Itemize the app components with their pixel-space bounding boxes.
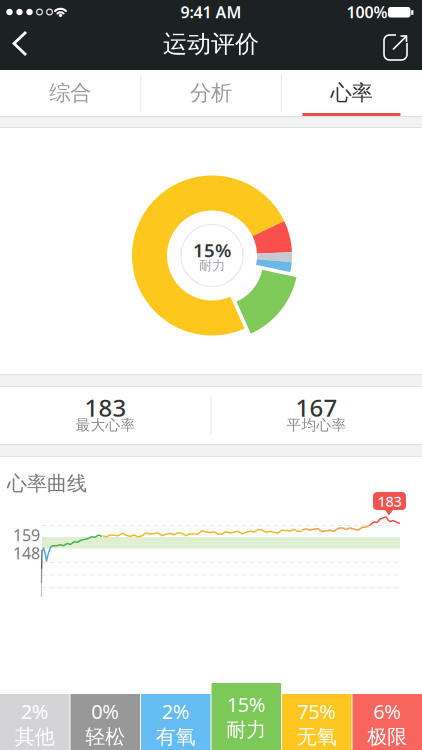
staticText: 耐力 [226, 718, 266, 742]
staticText: 综合 [49, 80, 91, 106]
staticText: 75% [297, 698, 336, 725]
staticText: 15% [193, 238, 231, 262]
staticText: 心率曲线 [7, 471, 87, 496]
staticText: 148 [13, 542, 40, 564]
button[interactable]: 2% [0, 694, 69, 750]
staticText: 有氧 [156, 725, 196, 749]
button[interactable]: 75% [282, 694, 351, 750]
staticText: 平均心率 [286, 416, 346, 434]
staticText: 159 [13, 524, 40, 546]
staticText: 分析 [190, 80, 232, 106]
staticText: 极限 [367, 725, 407, 749]
button[interactable]: Back [0, 25, 44, 62]
staticText: 167 [295, 392, 337, 423]
staticText: 100% [346, 1, 387, 23]
button[interactable]: 6% [352, 694, 422, 750]
staticText: 其他 [15, 725, 55, 749]
staticText: 0% [91, 698, 119, 725]
button[interactable]: 0% [70, 694, 140, 750]
button[interactable]: 2% [141, 694, 210, 750]
button[interactable]: 综合 [0, 70, 141, 116]
button[interactable]: Share [376, 25, 414, 67]
button[interactable]: 分析 [141, 70, 281, 116]
staticText: 心率 [330, 80, 372, 106]
staticText: 运动评价 [163, 29, 259, 59]
staticText: 耐力 [199, 257, 225, 274]
staticText: 轻松 [85, 725, 125, 749]
staticText: 183 [377, 491, 401, 511]
staticText: 最大心率 [75, 416, 135, 434]
staticText: 15% [227, 691, 266, 718]
button[interactable]: 15% [211, 683, 281, 750]
button[interactable]: 心率 [281, 70, 422, 116]
staticText: 无氧 [297, 725, 337, 749]
staticText: 2% [21, 698, 49, 725]
staticText: 2% [162, 698, 190, 725]
staticText: 9:41 AM [180, 1, 241, 23]
staticText: 6% [373, 698, 401, 725]
staticText: 183 [84, 392, 126, 423]
